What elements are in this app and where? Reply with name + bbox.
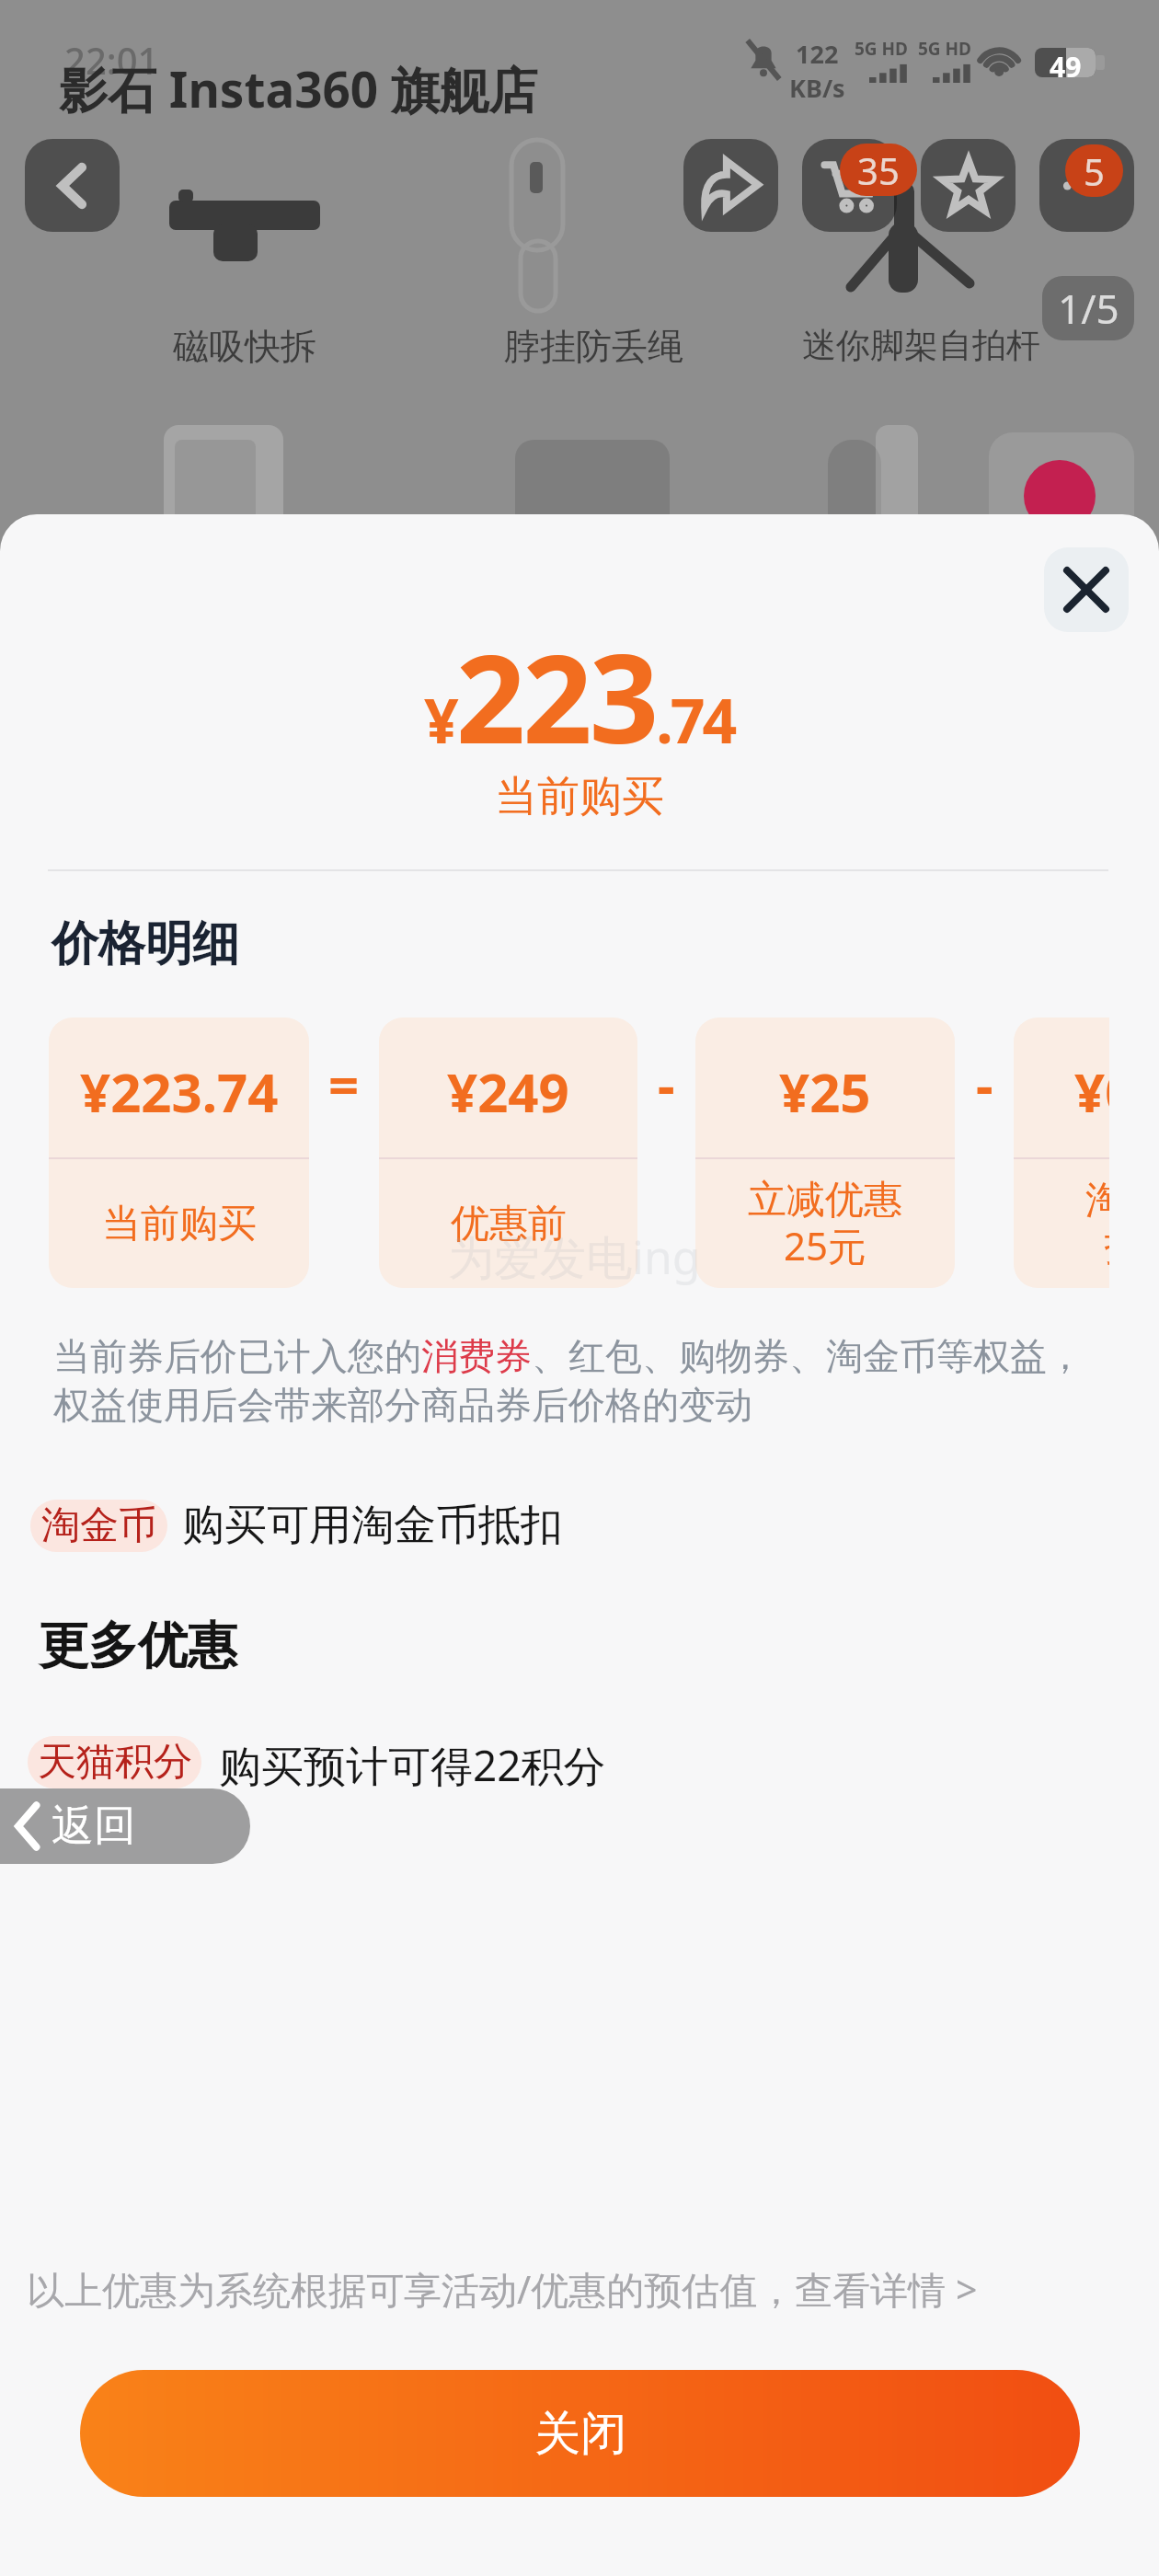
staticText: 优惠前 [451, 1200, 567, 1248]
staticText: 22:01 [64, 35, 159, 85]
staticText: ¥0.26 [1074, 1055, 1109, 1128]
staticText: 影石 Insta360 旗舰店 [59, 55, 537, 121]
button[interactable]: 以上优惠为系统根据可享活动/优惠的预估值，查看详情 > [27, 2258, 978, 2307]
staticText: - [658, 1048, 675, 1121]
staticText: 为爱发电ing [448, 1225, 701, 1288]
staticText: 淘金币 [41, 1501, 157, 1550]
button[interactable]: 分享 [683, 139, 778, 232]
staticText: 淘金币 抵扣 [1085, 1177, 1109, 1271]
staticText: ¥223.74 [424, 614, 735, 779]
button[interactable]: 更多 [1039, 139, 1134, 232]
staticText: 价格明细 [52, 914, 239, 973]
staticText: 磁吸快拆 [173, 324, 316, 369]
button[interactable]: ¥25 [695, 1018, 955, 1288]
staticText: KB/s [789, 71, 845, 105]
button[interactable]: 返回 [25, 139, 120, 232]
staticText: ¥249 [447, 1055, 569, 1128]
button[interactable]: 返回 [0, 1788, 250, 1864]
staticText: 122 [796, 37, 839, 71]
staticText: 当前购买 [102, 1200, 257, 1248]
button[interactable]: 关闭 [1044, 547, 1129, 632]
button[interactable]: 图片 1/5 [1042, 276, 1134, 340]
button[interactable]: 关闭 [80, 2370, 1080, 2497]
staticText: 迷你脚架自拍杆 [802, 324, 1040, 367]
staticText: 更多优惠 [39, 1615, 237, 1677]
staticText: 购买可用淘金币抵扣 [182, 1499, 563, 1552]
button[interactable]: 收藏 [921, 139, 1016, 232]
staticText: = [328, 1048, 360, 1121]
staticText: 以上优惠为系统根据可享活动/优惠的预估值，查看详情 > [27, 2263, 978, 2313]
button[interactable]: ¥0.26 [1014, 1018, 1109, 1288]
staticText: 关闭 [534, 2405, 626, 2463]
button[interactable]: 天猫积分 [28, 1736, 606, 1788]
button[interactable]: ¥249 [379, 1018, 637, 1288]
staticText: 35 [857, 145, 900, 195]
staticText: ¥25 [779, 1055, 871, 1128]
staticText: 49 [1050, 48, 1082, 77]
staticText: 1/5 [1058, 281, 1119, 336]
staticText: 5G HD [855, 37, 909, 61]
staticText: 当前购买 [495, 770, 664, 823]
staticText: ¥223.74 [80, 1055, 279, 1128]
staticText: 脖挂防丢绳 [504, 324, 683, 369]
button[interactable]: ¥223.74 [49, 1018, 309, 1288]
staticText: 购买预计可得22积分 [219, 1736, 606, 1788]
staticText: 立减优惠 25元 [748, 1176, 902, 1272]
staticText: 返回 [52, 1800, 136, 1853]
button[interactable]: 淘金币 [30, 1499, 563, 1552]
staticText: 天猫积分 [38, 1738, 192, 1787]
button[interactable]: 购物车 [802, 139, 897, 232]
staticText: 5G HD [918, 37, 972, 61]
staticText: 当前券后价已计入您的消费券、红包、购物券、淘金币等权益，权益使用后会带来部分商品… [53, 1333, 1107, 1429]
staticText: 5 [1084, 146, 1105, 196]
staticText: - [976, 1048, 993, 1121]
